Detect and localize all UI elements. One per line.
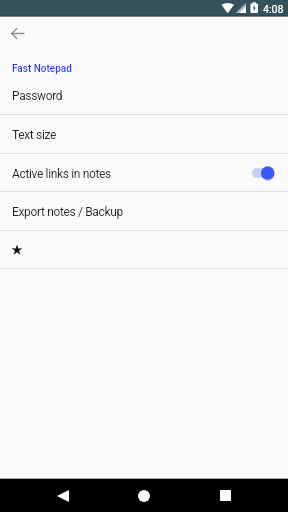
button[interactable]: Export notes / Backup [0,192,288,230]
button[interactable]: Back [45,478,81,512]
staticText: 4:08 [263,3,284,15]
button[interactable]: Active links in notes [0,154,288,191]
button[interactable]: Fast Notepad [0,55,288,114]
staticText: Active links in notes [12,167,111,181]
button[interactable]: Recent apps [207,478,243,512]
button[interactable]: Text size [0,115,288,153]
button[interactable] [0,231,288,268]
staticText: Export notes / Backup [12,205,123,219]
staticText: Text size [12,128,56,142]
staticText: Fast Notepad [12,63,72,75]
button[interactable]: Home [126,478,162,512]
button[interactable]: Navigate up [1,17,34,50]
staticText: Password [12,89,63,103]
